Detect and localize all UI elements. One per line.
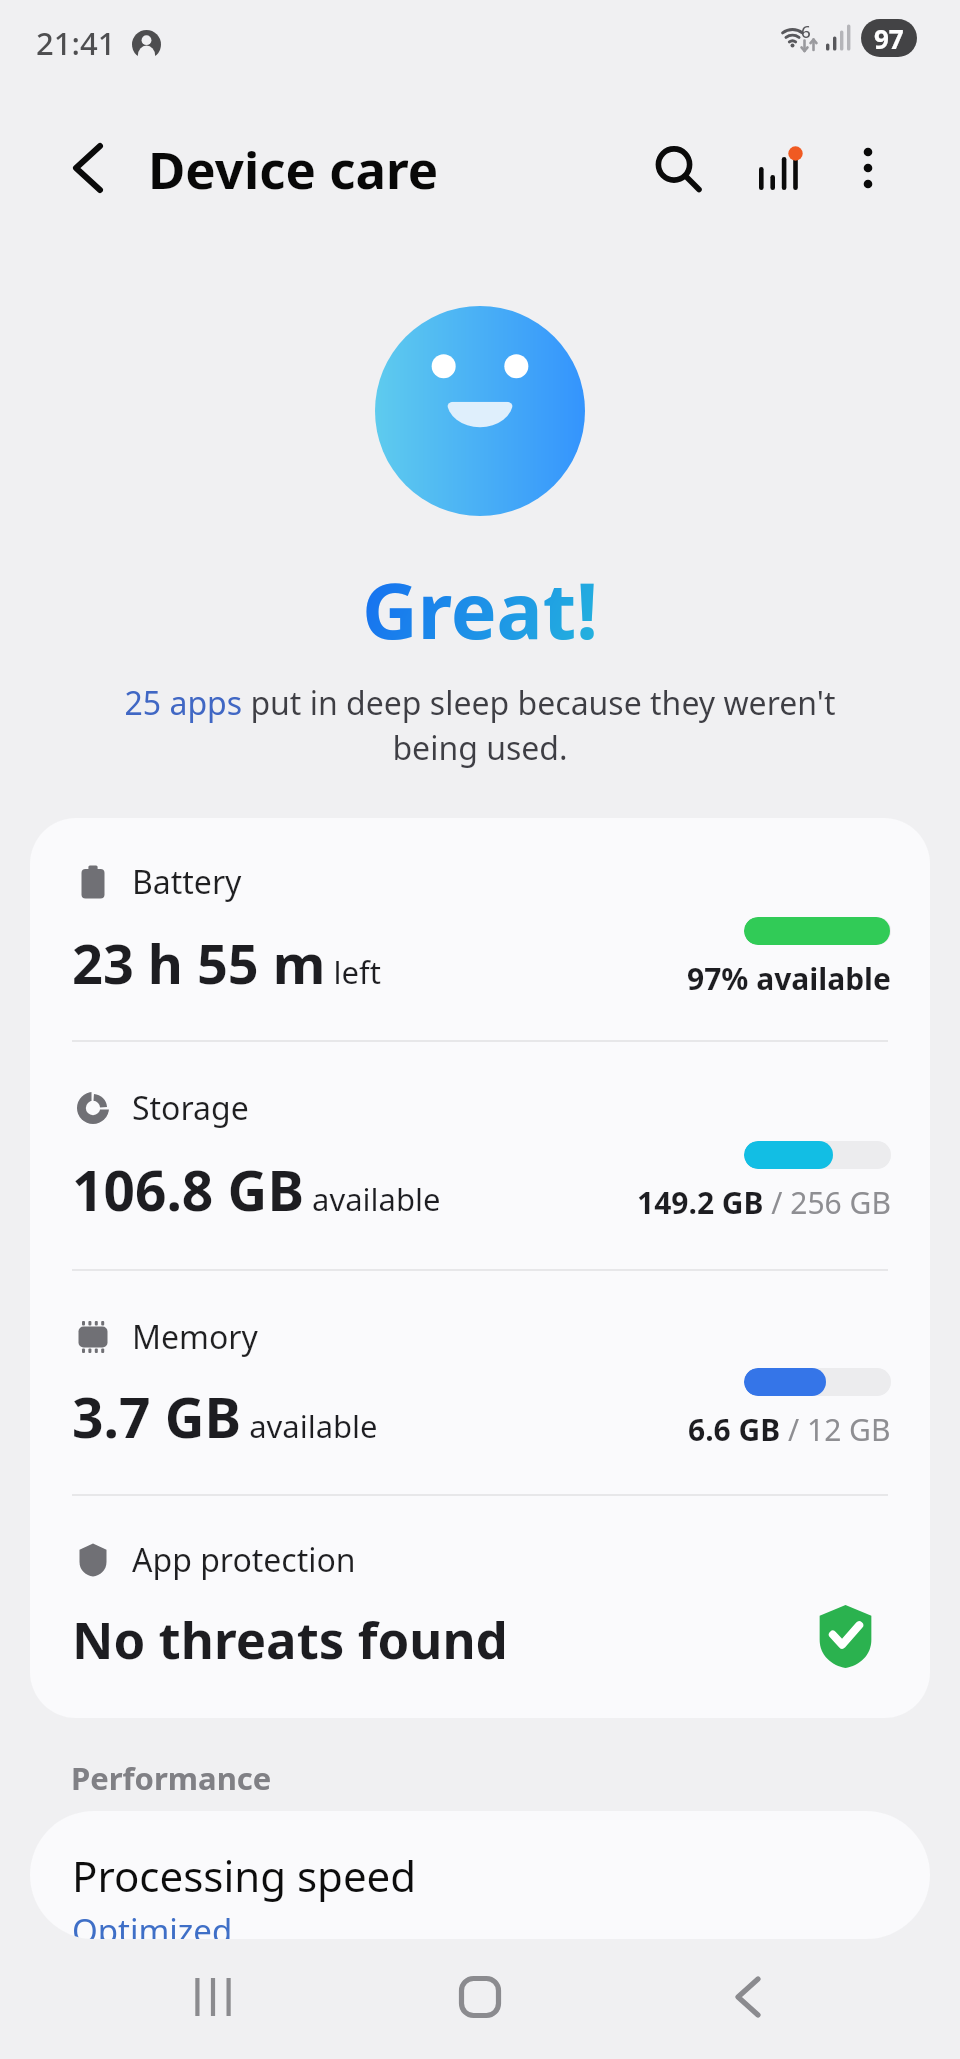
staticText: 149.2 GB / 256 GB (637, 1182, 891, 1223)
staticText: 6.6 GB / 12 GB (688, 1409, 891, 1450)
staticText: Battery (132, 860, 242, 904)
staticText: App protection (132, 1538, 356, 1582)
button[interactable]: Search (632, 123, 722, 213)
button[interactable]: Usage statistics (735, 123, 825, 213)
button[interactable]: Navigate up (44, 124, 132, 212)
staticText: 106.8 GB available (72, 1152, 441, 1227)
staticText: Storage (132, 1086, 249, 1130)
button[interactable]: Recent apps (158, 1942, 268, 2052)
staticText: 3.7 GB available (72, 1379, 378, 1454)
staticText: 97 (874, 21, 904, 56)
button[interactable]: Home (425, 1942, 535, 2052)
button[interactable]: Processing speed (30, 1811, 930, 1939)
staticText: 97% available (687, 958, 891, 999)
button[interactable]: Back (693, 1942, 803, 2052)
staticText: No threats found (72, 1604, 508, 1673)
staticText: Performance (71, 1757, 272, 1799)
staticText: 23 h 55 m left (72, 926, 381, 1000)
staticText: Optimized (72, 1908, 233, 1939)
button[interactable]: More options (823, 123, 913, 213)
staticText: 6 (801, 20, 811, 43)
staticText: Device care (148, 134, 439, 203)
staticText: Great! (362, 557, 598, 662)
staticText: Processing speed (72, 1847, 417, 1904)
staticText: Memory (132, 1315, 258, 1359)
staticText: 25 apps put in deep sleep because they w… (84, 681, 876, 769)
staticText: 21:41 (36, 22, 116, 64)
